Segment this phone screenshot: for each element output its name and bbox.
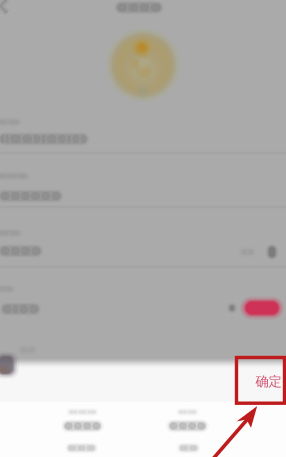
button[interactable]: 确定 [245, 364, 286, 399]
button[interactable] [0, 341, 286, 363]
button[interactable]: 返回 [0, 0, 14, 17]
button[interactable] [0, 219, 286, 271]
button[interactable] [0, 163, 286, 213]
button[interactable] [0, 277, 286, 329]
button[interactable]: 头像 [105, 27, 181, 103]
button[interactable] [0, 108, 286, 156]
staticText: 确定 [255, 373, 281, 390]
